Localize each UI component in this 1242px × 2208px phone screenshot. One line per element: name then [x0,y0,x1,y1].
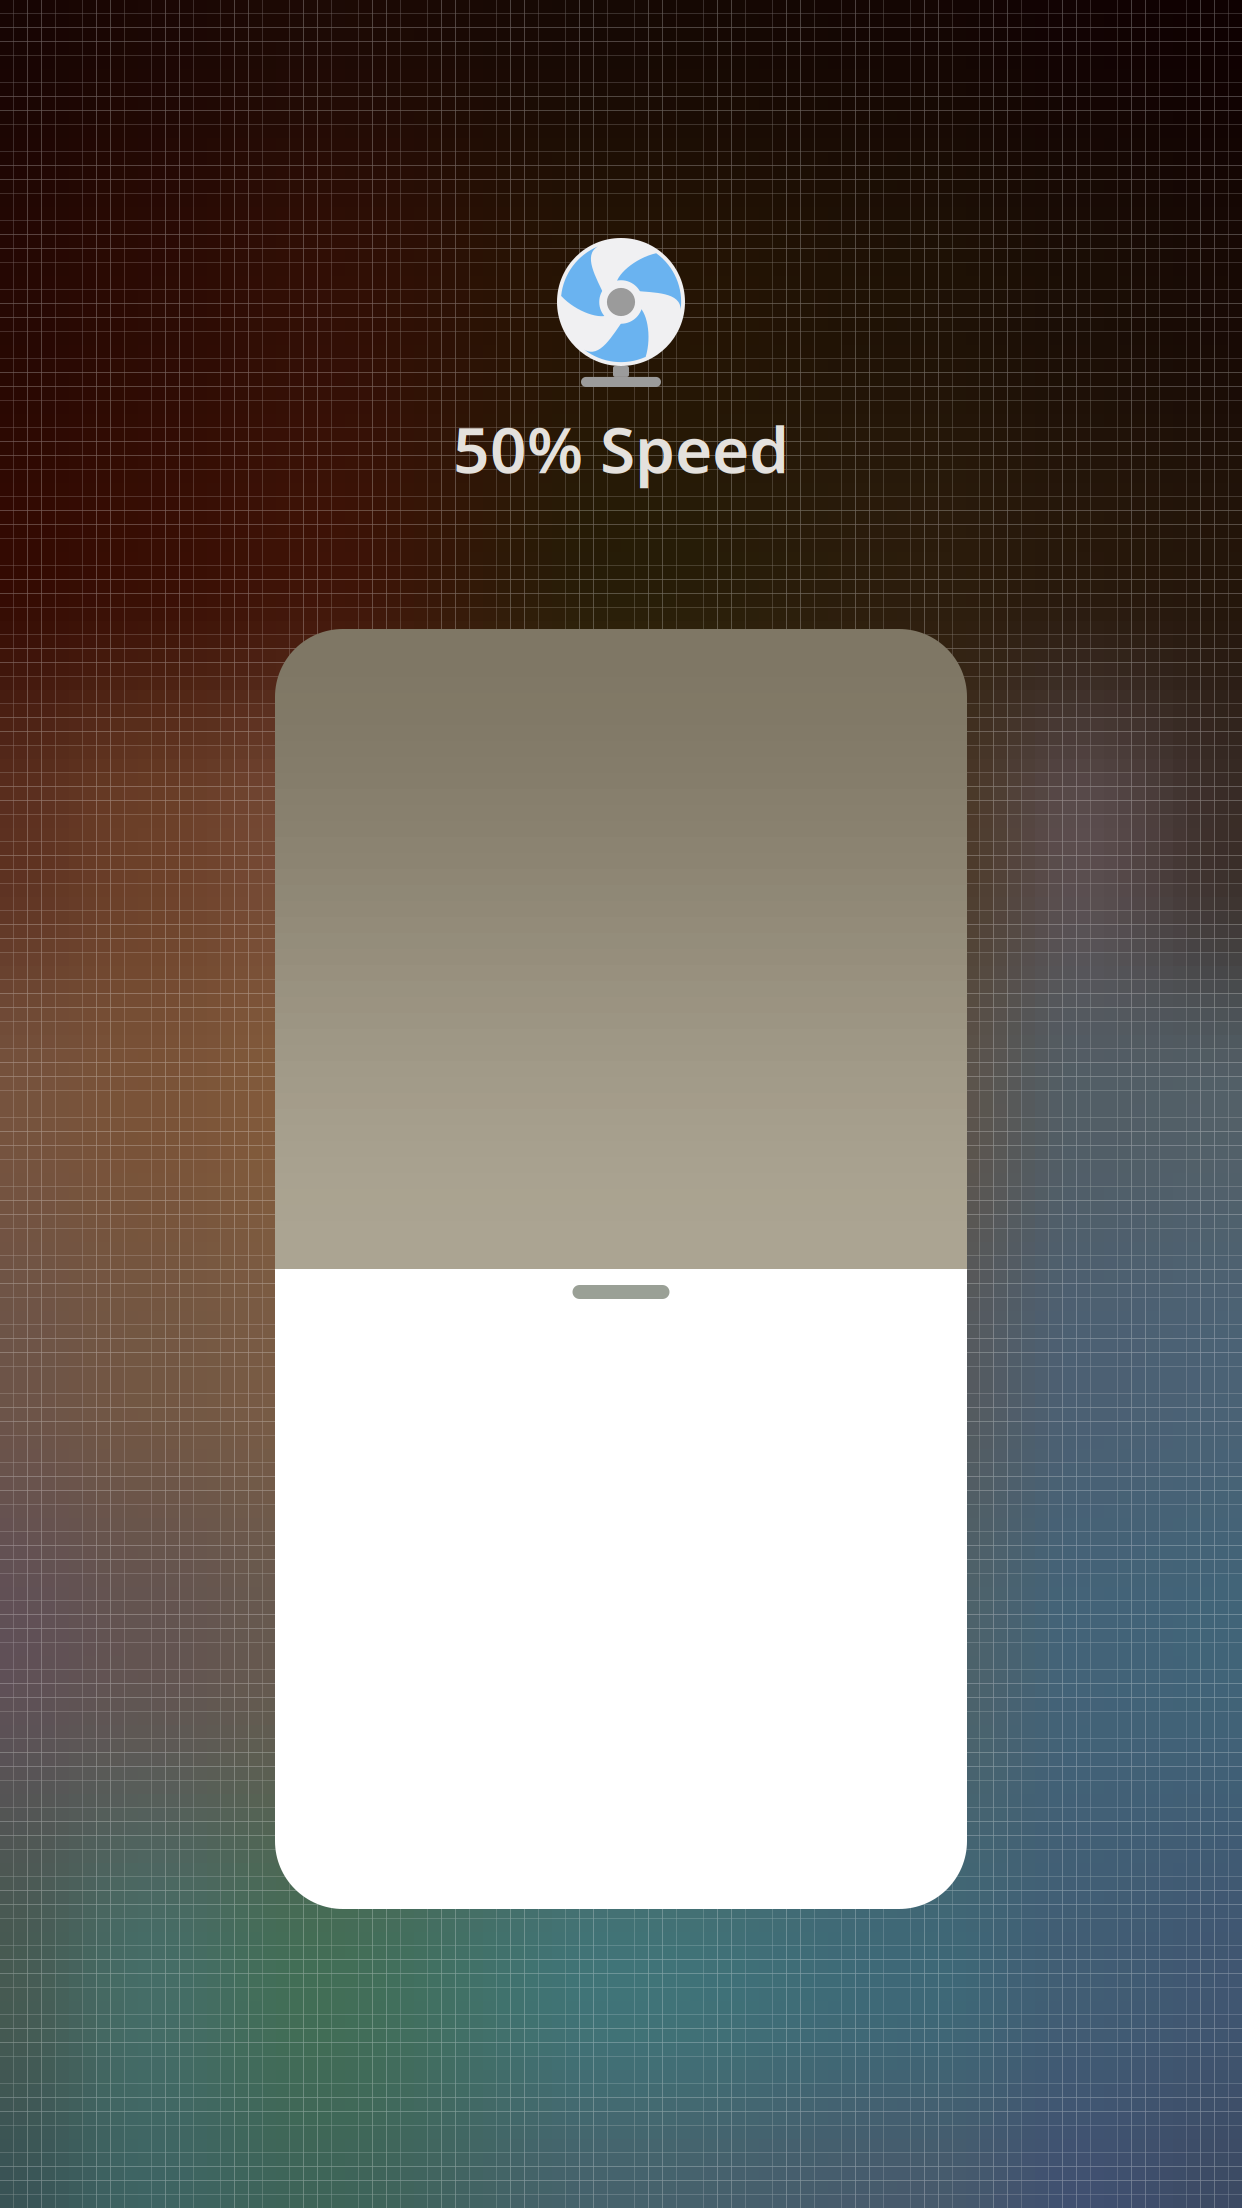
button[interactable]: Fan speed [275,629,967,1909]
staticText: 50% Speed [453,406,789,491]
